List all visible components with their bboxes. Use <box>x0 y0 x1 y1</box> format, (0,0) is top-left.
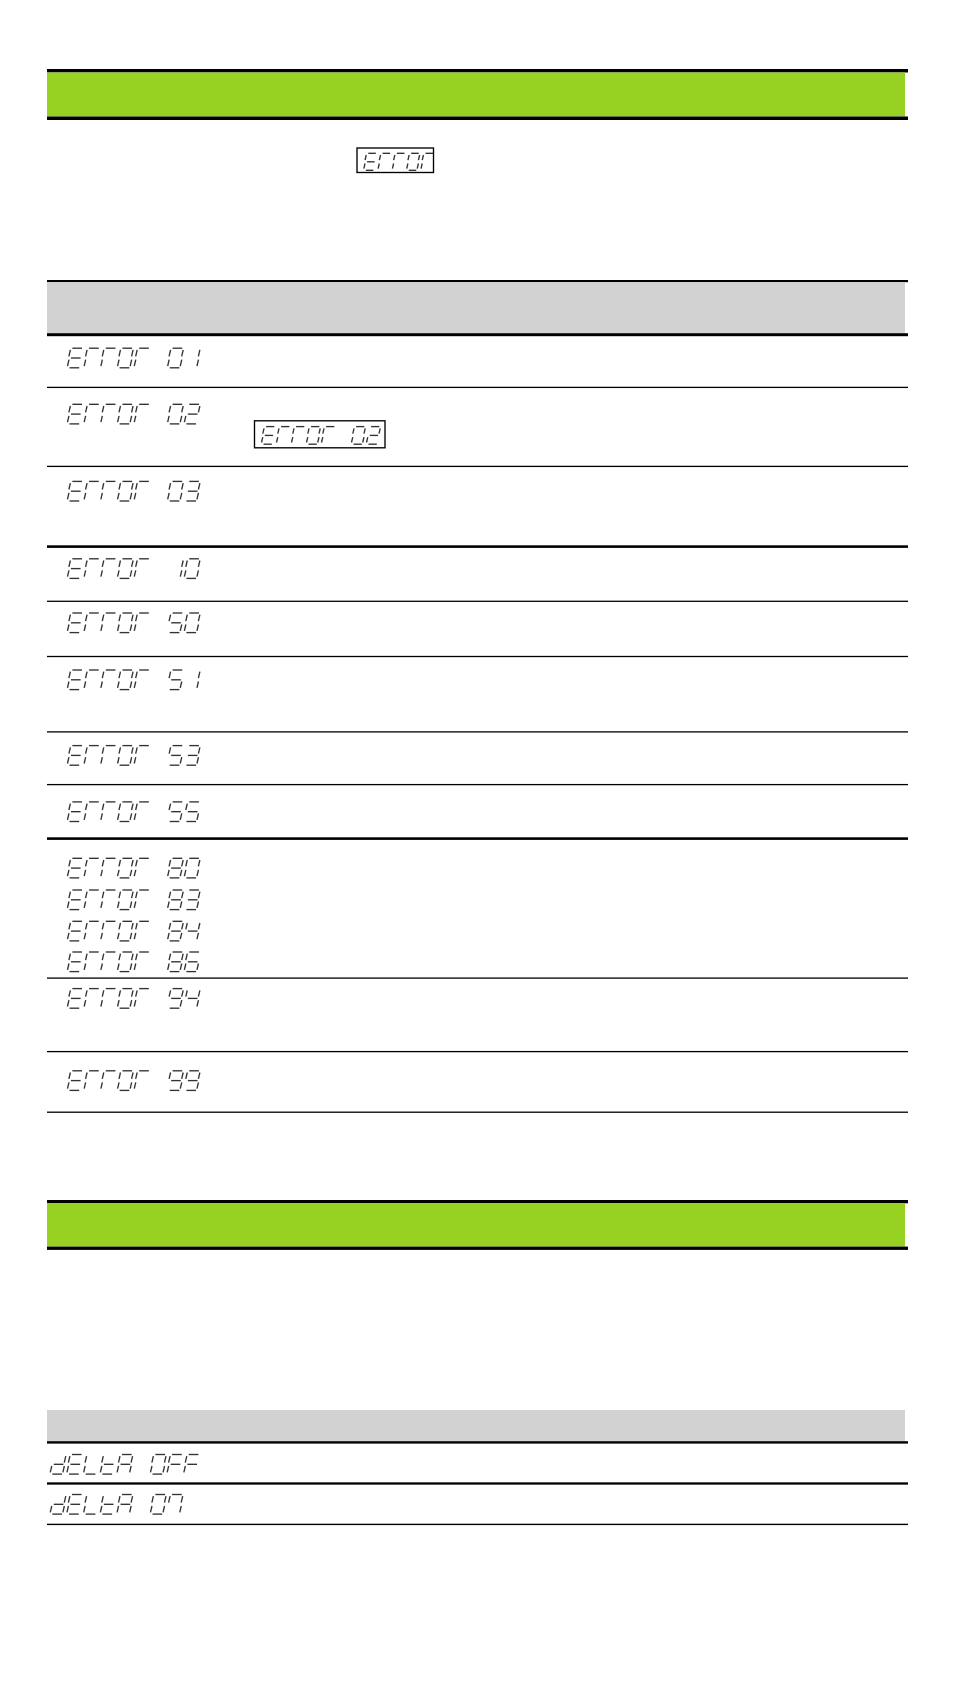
button[interactable]: Error 94 <box>47 980 908 1052</box>
button[interactable]: Delta settings section <box>47 1200 908 1250</box>
button[interactable]: Error display sample <box>357 148 434 173</box>
button[interactable]: Column header <box>47 280 908 336</box>
button[interactable]: Error 03 <box>47 468 908 548</box>
button[interactable]: Error codes section <box>47 69 908 120</box>
button[interactable]: Error 02 <box>47 389 908 467</box>
button[interactable]: Column header <box>47 1410 908 1444</box>
button[interactable]: Error 50 <box>47 603 908 657</box>
button[interactable]: delta On <box>47 1486 908 1525</box>
button[interactable]: Error 10 <box>47 548 908 602</box>
button[interactable]: Error 51 <box>47 658 908 733</box>
button[interactable]: Error 01 <box>47 337 908 388</box>
button[interactable]: Error 99 <box>47 1053 908 1113</box>
button[interactable]: Error 55 <box>47 787 908 840</box>
button[interactable]: delta OFF <box>47 1444 908 1485</box>
button[interactable]: Error 80 83 84 86 <box>47 840 908 979</box>
button[interactable]: Error 53 <box>47 733 908 785</box>
